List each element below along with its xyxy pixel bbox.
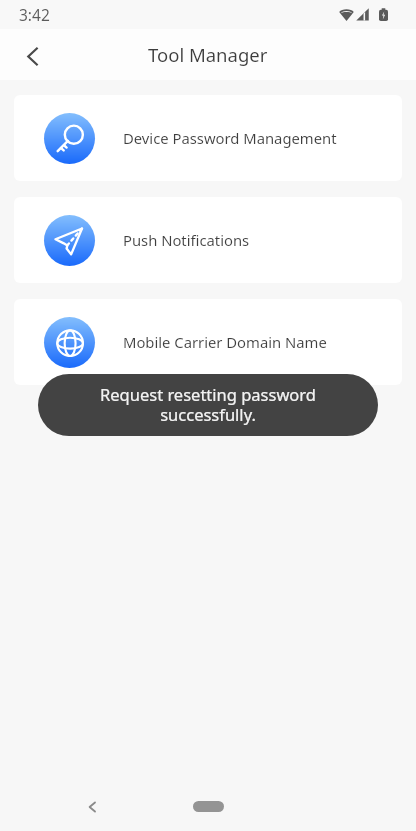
button[interactable]: Back xyxy=(8,31,56,79)
button[interactable]: Home xyxy=(193,801,224,812)
button[interactable]: Back xyxy=(70,785,114,829)
staticText: Push Notifications xyxy=(123,230,250,250)
button[interactable]: Push Notifications xyxy=(14,197,402,283)
button[interactable]: Device Password Management xyxy=(14,95,402,181)
staticText: Device Password Management xyxy=(123,128,337,148)
button[interactable]: Mobile Carrier Domain Name xyxy=(14,299,402,385)
staticText: 3:42 xyxy=(19,4,50,25)
staticText: Tool Manager xyxy=(148,42,268,67)
staticText: Mobile Carrier Domain Name xyxy=(123,332,327,352)
staticText: Request resetting password successfully. xyxy=(78,383,338,426)
